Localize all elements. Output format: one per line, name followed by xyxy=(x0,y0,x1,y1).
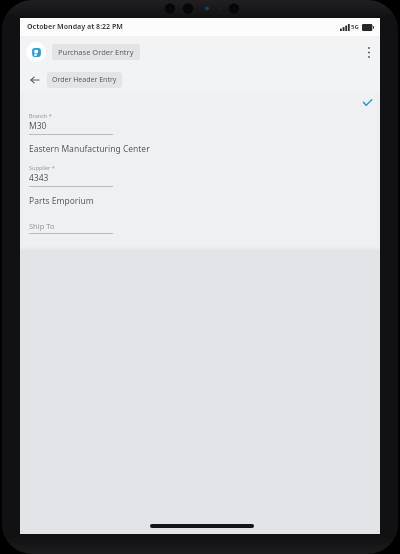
staticText: Ship To xyxy=(29,221,55,231)
button[interactable]: Back xyxy=(27,72,43,88)
staticText: Order Header Entry xyxy=(52,75,117,85)
button[interactable]: More options xyxy=(358,41,380,63)
staticText: Supplier * xyxy=(29,164,55,171)
staticText: October Monday at 8:22 PM xyxy=(27,22,123,32)
button[interactable]: Save xyxy=(358,93,376,111)
staticText: Purchase Order Entry xyxy=(58,47,134,57)
button[interactable]: Branch * xyxy=(29,112,113,135)
button[interactable]: Eastern Manufacturing Center xyxy=(29,143,150,155)
staticText: Branch * xyxy=(29,112,52,119)
button[interactable]: Supplier * xyxy=(29,164,113,187)
button[interactable]: Parts Emporium xyxy=(29,195,94,207)
button[interactable]: App menu xyxy=(26,42,46,62)
button[interactable]: Ship To xyxy=(29,221,113,234)
staticText: 4343 xyxy=(29,172,49,184)
button[interactable]: Order Header Entry xyxy=(47,72,122,88)
staticText: 5G xyxy=(351,23,359,31)
button[interactable]: Purchase Order Entry xyxy=(52,44,140,60)
staticText: M30 xyxy=(29,120,47,132)
